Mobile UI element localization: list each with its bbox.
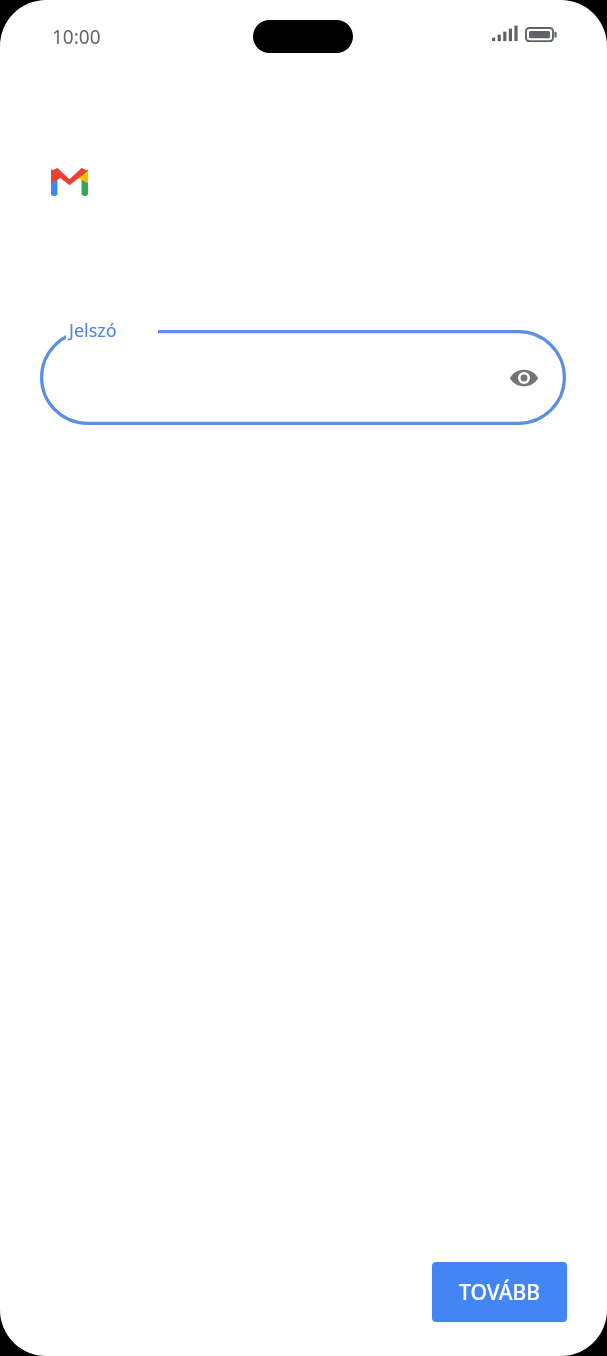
button[interactable]: TOVÁBB <box>432 1262 567 1322</box>
button[interactable]: Jelszó megjelenítése <box>500 354 548 402</box>
staticText: TOVÁBB <box>459 1278 540 1307</box>
button[interactable]: Jelszó megjelenítése <box>40 330 566 425</box>
staticText: Jelszó <box>69 318 117 343</box>
staticText: 10:00 <box>52 24 101 50</box>
